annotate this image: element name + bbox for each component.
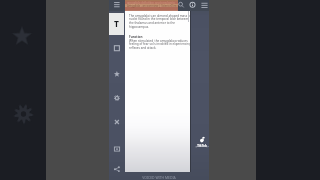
staticText: The amygdala is an almond-shaped mass of [129, 14, 191, 18]
staticText: reflexes and attack. [129, 46, 157, 50]
staticText: Function [129, 35, 143, 39]
button[interactable]: More options [198, 0, 209, 11]
button[interactable]: amygdala definition anatomy brain [125, 0, 178, 11]
staticText: T [114, 18, 119, 30]
button[interactable]: Information [187, 0, 198, 11]
button[interactable]: Menu [109, 0, 125, 11]
button[interactable]: The amygdala is an almond-shaped mass of [125, 11, 190, 172]
staticText: amygdala definition anatomy brain [127, 1, 175, 5]
staticText: VOICED WITH MEDIA [109, 175, 209, 180]
button[interactable]: Settings [109, 90, 125, 106]
staticText: hippocampus. [129, 25, 150, 29]
staticText: the thalamus and anterior to the [129, 21, 175, 25]
staticText: Amygdala - an overview | ScienceDirect T… [127, 4, 180, 8]
button[interactable]: Share [109, 161, 125, 177]
staticText: TikTok [192, 144, 212, 148]
staticText: nuclei found in the temporal lobe betwee… [129, 17, 189, 21]
button[interactable]: Favourites [109, 66, 125, 82]
staticText: When stimulated, the amygdala produces [129, 39, 188, 43]
button[interactable]: Search [176, 0, 187, 11]
button[interactable]: Camera [109, 141, 125, 157]
button[interactable]: Tabs [109, 40, 125, 56]
button[interactable]: T [109, 13, 124, 35]
staticText: feeling of fear so is involved in experi… [129, 42, 191, 46]
button[interactable]: Close [109, 114, 125, 130]
staticText: @anthony_k [192, 145, 212, 148]
